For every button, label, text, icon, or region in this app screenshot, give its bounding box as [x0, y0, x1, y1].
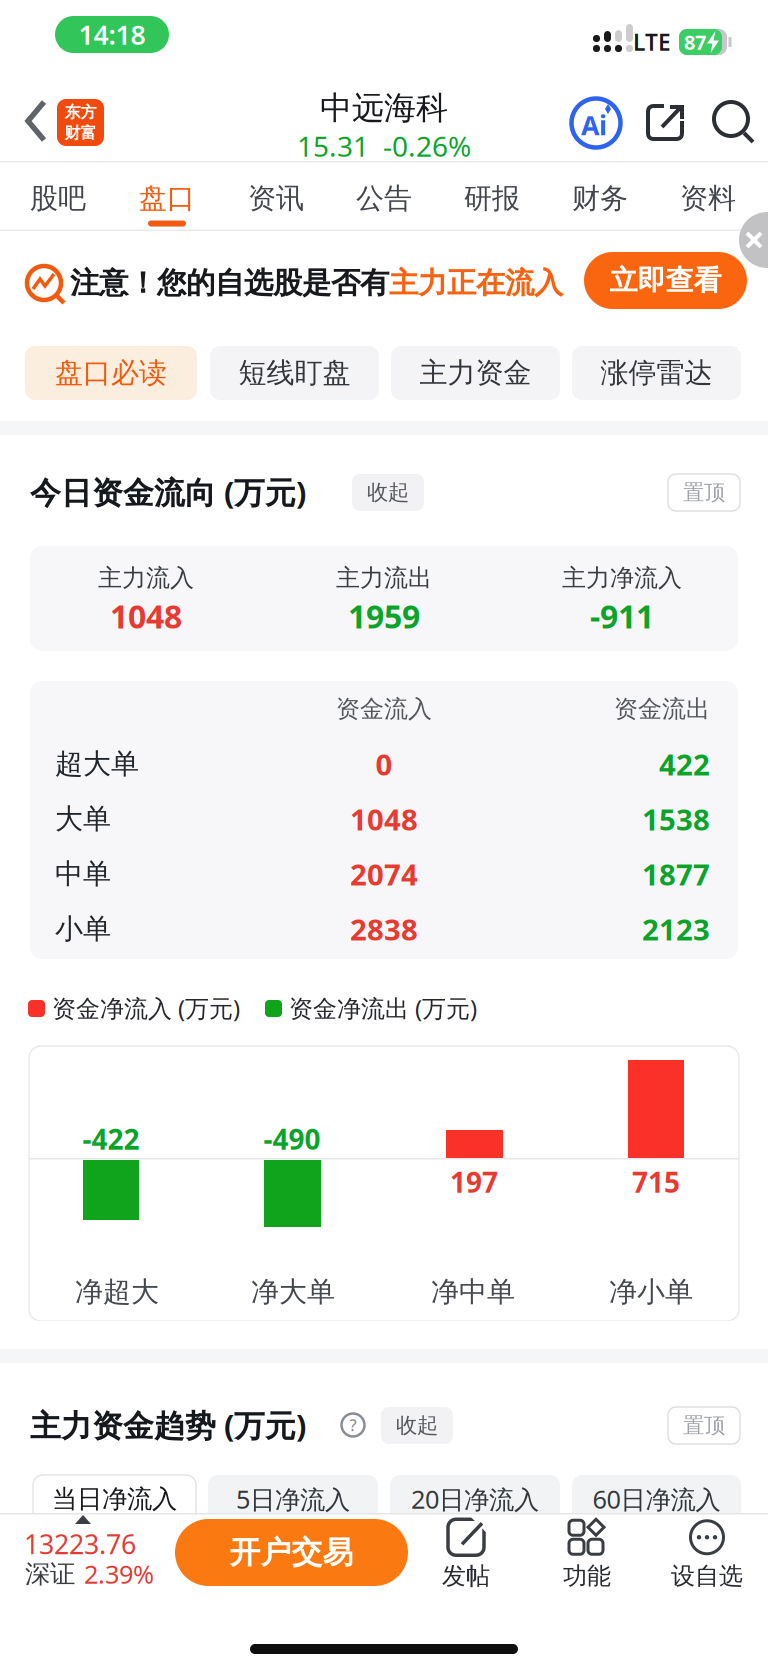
button[interactable]: 主力资金 [391, 346, 560, 400]
button[interactable]: 20日净流入 [390, 1475, 560, 1523]
button[interactable]: 资料 [658, 170, 758, 226]
staticText: 2.39% [84, 1557, 154, 1591]
staticText: 主力流入 [98, 563, 194, 593]
staticText: 立即查看 [609, 263, 721, 298]
staticText: 小单 [55, 912, 111, 946]
button[interactable]: 股吧 [8, 170, 108, 226]
staticText: 研报 [464, 181, 520, 216]
button[interactable]: 收起 [381, 1407, 453, 1444]
staticText: 主力资金 [419, 356, 531, 390]
staticText: 收起 [367, 479, 409, 506]
button[interactable]: 盘口必读 [25, 346, 197, 400]
staticText: 财务 [572, 181, 628, 216]
staticText: 资金净流入 (万元) [52, 992, 240, 1024]
button[interactable]: 返回 [26, 100, 48, 144]
staticText: Ai [581, 107, 607, 143]
staticText: -0.26% [383, 127, 471, 165]
staticText: 2838 [350, 909, 418, 948]
staticText: 2123 [642, 909, 710, 948]
button[interactable]: 涨停雷达 [572, 346, 741, 400]
staticText: 设自选 [671, 1561, 743, 1591]
button[interactable]: 资讯 [226, 170, 326, 226]
staticText: 财富 [64, 123, 96, 143]
button[interactable]: 发帖 [421, 1520, 511, 1590]
staticText: 置顶 [683, 479, 725, 506]
staticText: 资金净流出 (万元) [289, 992, 477, 1024]
staticText: 注意！您的自选股是否有 [70, 265, 389, 301]
staticText: 置顶 [683, 1412, 725, 1439]
staticText: 主力净流入 [562, 563, 682, 593]
staticText: 422 [659, 744, 710, 783]
staticText: 净小单 [609, 1275, 693, 1309]
staticText: 短线盯盘 [238, 356, 350, 390]
staticText: 发帖 [442, 1561, 490, 1591]
button[interactable]: 帮助 [340, 1412, 366, 1438]
staticText: 开户交易 [229, 1534, 353, 1571]
staticText: 中远海科 [320, 88, 448, 128]
staticText: -422 [82, 1120, 139, 1158]
staticText: 收起 [396, 1412, 438, 1439]
staticText: 主力资金趋势 (万元) [30, 1405, 306, 1445]
button[interactable]: 置顶 [668, 1407, 740, 1444]
staticText: 0 [375, 744, 392, 783]
button[interactable]: AI 助手 [569, 96, 623, 150]
button[interactable]: 东方财富 [57, 99, 104, 146]
button[interactable]: 返回通话 [55, 16, 169, 53]
button[interactable]: 公告 [334, 170, 434, 226]
button[interactable]: 搜索 [712, 100, 756, 145]
button[interactable]: 关闭 [734, 231, 768, 261]
staticText: 60日净流入 [592, 1482, 720, 1516]
staticText: 资金流入 [336, 694, 432, 724]
staticText: 资料 [680, 181, 736, 216]
staticText: 公告 [356, 181, 412, 216]
button[interactable]: 立即查看 [584, 252, 747, 309]
staticText: 股吧 [30, 181, 86, 216]
button[interactable]: 深证指数 [14, 1523, 170, 1589]
staticText: 1877 [642, 854, 710, 893]
staticText: 净超大 [75, 1275, 159, 1309]
staticText: LTE [633, 27, 671, 57]
staticText: 14:18 [78, 17, 145, 52]
staticText: 主力正在流入 [389, 265, 563, 301]
button[interactable]: 置顶 [668, 474, 740, 511]
staticText: 净中单 [431, 1275, 515, 1309]
staticText: 87 [684, 29, 706, 55]
button[interactable]: 60日净流入 [572, 1475, 741, 1523]
staticText: 1538 [642, 799, 710, 838]
button[interactable]: 收起 [352, 474, 424, 511]
button[interactable]: 财务 [550, 170, 650, 226]
staticText: 20日净流入 [411, 1482, 539, 1516]
staticText: 15.31 [297, 127, 369, 165]
staticText: 13223.76 [24, 1526, 136, 1562]
staticText: 盘口 [139, 181, 195, 216]
staticText: 东方 [64, 102, 96, 122]
staticText: 深证 [25, 1558, 75, 1589]
button[interactable]: 短线盯盘 [210, 346, 379, 400]
staticText: 1048 [110, 595, 182, 637]
button[interactable]: 5日净流入 [208, 1475, 378, 1523]
staticText: 净大单 [251, 1275, 335, 1309]
button[interactable]: 功能 [542, 1520, 632, 1590]
staticText: 大单 [55, 802, 111, 836]
staticText: 1048 [350, 799, 418, 838]
button[interactable]: 当日净流入 [33, 1475, 196, 1523]
staticText: ? [349, 1414, 356, 1436]
button[interactable]: 分享 [646, 104, 684, 141]
staticText: 今日资金流向 (万元) [30, 472, 306, 512]
staticText: 主力流出 [336, 563, 432, 593]
staticText: 中单 [55, 857, 111, 891]
button[interactable]: 研报 [442, 170, 542, 226]
button[interactable]: 开户交易 [175, 1519, 408, 1586]
staticText: 1959 [348, 595, 420, 637]
staticText: 5日净流入 [236, 1482, 350, 1516]
button[interactable]: 盘口 [117, 170, 217, 226]
staticText: 资金流出 [614, 694, 710, 724]
button[interactable]: 设自选 [657, 1520, 757, 1590]
staticText: -490 [263, 1120, 320, 1158]
staticText: -911 [590, 595, 654, 637]
staticText: 涨停雷达 [600, 356, 712, 390]
staticText: 当日净流入 [52, 1483, 177, 1514]
staticText: 715 [632, 1163, 680, 1201]
staticText: 197 [450, 1163, 498, 1201]
staticText: 超大单 [55, 747, 139, 781]
